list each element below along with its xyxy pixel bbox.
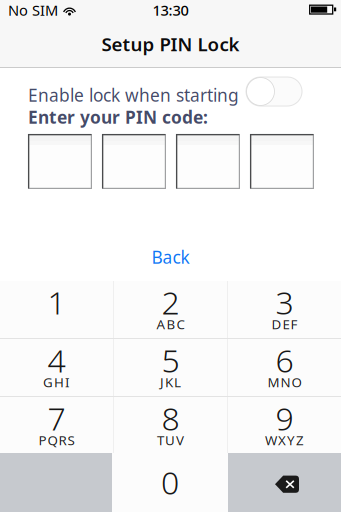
button[interactable]: PIN digit	[176, 134, 240, 189]
button[interactable]: 3	[228, 281, 341, 338]
button[interactable]: 0	[112, 453, 228, 512]
staticText: 13:30	[152, 0, 188, 20]
staticText: J K L	[160, 373, 181, 391]
button[interactable]: 7	[0, 397, 113, 453]
staticText: Enable lock when starting	[28, 83, 239, 106]
button[interactable]: 9	[228, 397, 341, 453]
button[interactable]: 2	[114, 281, 227, 338]
button[interactable]: 8	[114, 397, 227, 453]
button[interactable]: Enable lock when starting	[246, 77, 302, 106]
staticText: P Q R S	[38, 431, 74, 449]
staticText: D E F	[271, 315, 297, 333]
staticText: 1	[47, 281, 65, 323]
staticText: 7	[47, 397, 65, 439]
staticText: M N O	[267, 373, 301, 391]
staticText: 6	[275, 339, 293, 381]
button[interactable]: Delete	[228, 453, 341, 512]
staticText: W X Y Z	[265, 431, 304, 449]
staticText: Back	[151, 245, 189, 268]
staticText: 8	[161, 397, 179, 439]
staticText: 0	[161, 461, 179, 503]
staticText: 5	[161, 339, 179, 381]
staticText: G H I	[43, 373, 70, 391]
staticText: 4	[47, 339, 65, 381]
button[interactable]: PIN digit	[28, 134, 92, 189]
button[interactable]: Back	[0, 246, 341, 268]
button[interactable]: 5	[114, 339, 227, 396]
button[interactable]: PIN digit	[250, 134, 314, 189]
staticText: 3	[275, 281, 293, 323]
button[interactable]: 1	[0, 281, 113, 338]
staticText: 2	[161, 281, 179, 323]
staticText: 9	[275, 397, 293, 439]
staticText: No SIM	[8, 0, 58, 20]
staticText: Enter your PIN code:	[28, 105, 208, 128]
button[interactable]: 6	[228, 339, 341, 396]
button[interactable]: 4	[0, 339, 113, 396]
staticText: Setup PIN Lock	[101, 32, 239, 56]
button[interactable]: PIN digit	[102, 134, 166, 189]
staticText: T U V	[157, 431, 184, 449]
staticText: A B C	[156, 315, 184, 333]
